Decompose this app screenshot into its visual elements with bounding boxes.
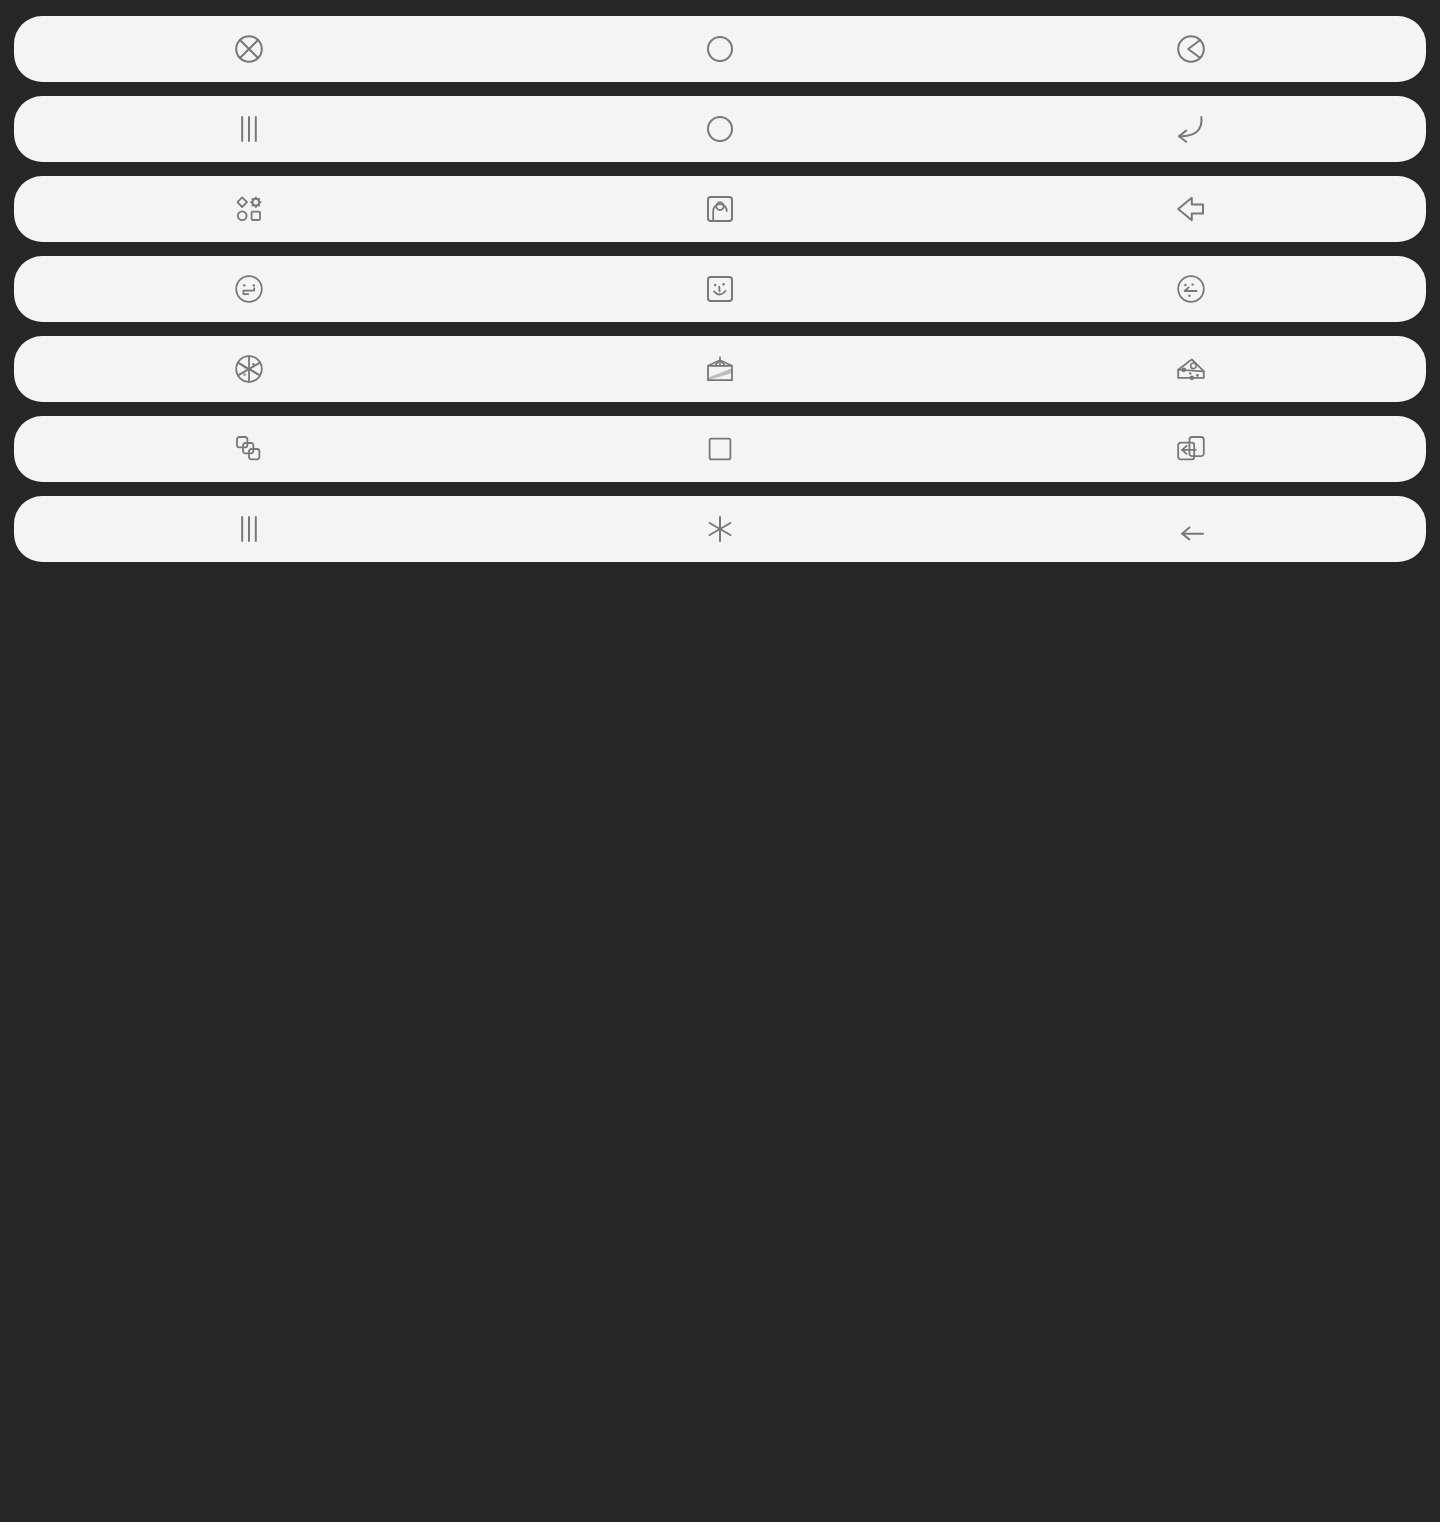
- button[interactable]: Home: [700, 109, 740, 149]
- button[interactable]: Pizza: [14, 336, 1426, 402]
- button[interactable]: Close: [229, 29, 269, 69]
- button[interactable]: Cascade windows: [229, 429, 269, 469]
- button[interactable]: Neutral face: [229, 269, 269, 309]
- button[interactable]: Apps: [229, 189, 269, 229]
- button[interactable]: Home: [700, 29, 740, 69]
- button[interactable]: Apps: [14, 176, 1426, 242]
- button[interactable]: Recents: [14, 496, 1426, 562]
- button[interactable]: Back: [1171, 189, 1211, 229]
- button[interactable]: Back: [1171, 509, 1211, 549]
- button[interactable]: Pizza: [229, 349, 269, 389]
- button[interactable]: Close: [14, 16, 1426, 82]
- button[interactable]: Recents: [14, 96, 1426, 162]
- button[interactable]: Neutral face: [14, 256, 1426, 322]
- button[interactable]: Return: [1171, 109, 1211, 149]
- button[interactable]: Cascade windows: [14, 416, 1426, 482]
- button[interactable]: Confused face: [1171, 269, 1211, 309]
- button[interactable]: Recents: [229, 109, 269, 149]
- button[interactable]: Contact: [700, 189, 740, 229]
- button[interactable]: Stop: [700, 429, 740, 469]
- button[interactable]: Asterisk: [700, 509, 740, 549]
- button[interactable]: Back: [1171, 29, 1211, 69]
- button[interactable]: Recents: [229, 509, 269, 549]
- button[interactable]: Switch app: [1171, 429, 1211, 469]
- button[interactable]: Cheese: [1171, 349, 1211, 389]
- button[interactable]: Smiley face: [700, 269, 740, 309]
- button[interactable]: Cake slice: [700, 349, 740, 389]
